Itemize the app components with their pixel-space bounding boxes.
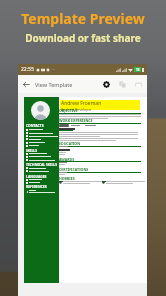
staticText: CERTIFICATIONS bbox=[59, 167, 89, 172]
staticText: Android Developer bbox=[61, 107, 92, 112]
staticText: AWARDS bbox=[59, 157, 75, 162]
button[interactable]: Copy bbox=[114, 75, 130, 93]
staticText: Download or fast share bbox=[25, 31, 141, 45]
staticText: TECHNICAL SKILLS bbox=[26, 162, 58, 167]
staticText: EDUCATION bbox=[59, 141, 81, 146]
staticText: Andrew Froeman bbox=[61, 100, 102, 107]
staticText: 98 bbox=[136, 68, 140, 72]
button[interactable]: Share bbox=[130, 75, 146, 93]
staticText: OBJECTIVE bbox=[59, 108, 78, 113]
button[interactable]: Back bbox=[18, 75, 35, 93]
staticText: REFERENCES bbox=[26, 184, 47, 189]
staticText: LANGUAGES bbox=[26, 174, 47, 179]
staticText: SKILLS bbox=[26, 148, 38, 153]
staticText: View Template bbox=[35, 81, 73, 88]
staticText: Template Preview bbox=[21, 9, 145, 28]
staticText: CONTACTS bbox=[26, 123, 44, 128]
staticText: WORK EXPERIENCE bbox=[59, 118, 93, 123]
staticText: HOBBIES bbox=[59, 176, 75, 181]
button[interactable]: Settings bbox=[98, 75, 114, 93]
staticText: ··· bbox=[52, 67, 56, 72]
staticText: 22:55 bbox=[21, 66, 34, 73]
